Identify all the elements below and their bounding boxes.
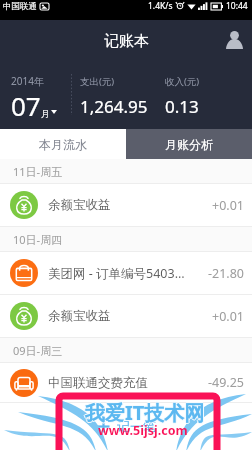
staticText: 我爱IT技术网 bbox=[85, 400, 205, 427]
staticText: 1,264.95 bbox=[80, 95, 148, 118]
button[interactable]: 余额宝收益 bbox=[0, 184, 252, 226]
button[interactable]: 记一笔 bbox=[81, 410, 172, 442]
staticText: +0.01 bbox=[212, 197, 244, 214]
staticText: 中国联通 bbox=[3, 1, 37, 12]
button[interactable]: 中国联通交费充值 bbox=[0, 363, 252, 402]
button[interactable]: 美团网 - 订单编号5403… bbox=[0, 252, 252, 294]
staticText: 月账分析 bbox=[165, 137, 213, 152]
staticText: 我爱IT技术网 bbox=[85, 398, 205, 425]
staticText: 我爱IT技术网 bbox=[85, 399, 205, 426]
staticText: 07 bbox=[11, 88, 41, 123]
staticText: 记一笔 bbox=[117, 418, 156, 434]
staticText: 收入(元) bbox=[165, 75, 200, 88]
staticText: 10日-周四 bbox=[13, 232, 63, 247]
staticText: +0.01 bbox=[212, 308, 244, 325]
staticText: 09日-周三 bbox=[13, 343, 63, 358]
staticText: 支出(元) bbox=[80, 75, 115, 88]
staticText: www.5ijsj.com bbox=[98, 422, 188, 439]
staticText: 美团网 - 订单编号5403… bbox=[48, 265, 185, 282]
staticText: 11日-周五 bbox=[13, 164, 63, 179]
staticText: 0.13 bbox=[165, 95, 199, 118]
staticText: 记账本 bbox=[104, 32, 149, 51]
button[interactable]: Account bbox=[226, 30, 243, 49]
button[interactable]: 本月流水 bbox=[0, 129, 126, 159]
staticText: 余额宝收益 bbox=[48, 197, 111, 213]
staticText: 余额宝收益 bbox=[48, 308, 111, 324]
staticText: 中国联通交费充值 bbox=[48, 375, 148, 391]
staticText: 2014年 bbox=[11, 74, 44, 88]
button[interactable]: 月账分析 bbox=[126, 129, 252, 159]
staticText: 1.4K/s bbox=[148, 0, 173, 12]
staticText: 本月流水 bbox=[39, 137, 87, 152]
staticText: 10:44 bbox=[226, 0, 248, 12]
staticText: 我爱IT技术网 bbox=[86, 399, 206, 426]
button[interactable]: 余额宝收益 bbox=[0, 295, 252, 337]
staticText: 我爱IT技术网 bbox=[84, 399, 204, 426]
staticText: -21.80 bbox=[208, 265, 244, 282]
staticText: 月 bbox=[41, 109, 50, 120]
staticText: -49.25 bbox=[208, 374, 244, 391]
